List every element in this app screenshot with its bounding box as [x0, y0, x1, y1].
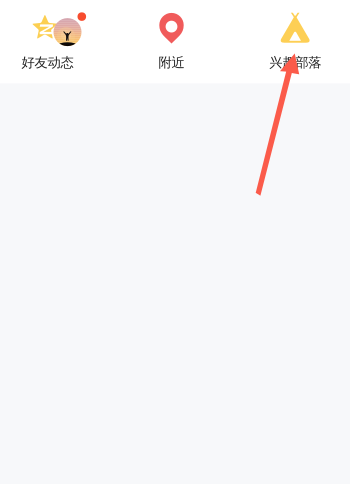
- button[interactable]: 兴趣部落: [250, 0, 340, 85]
- staticText: 附近: [158, 54, 184, 71]
- staticText: 兴趣部落: [269, 54, 321, 71]
- button[interactable]: 好友动态: [3, 0, 93, 85]
- button[interactable]: 附近: [126, 0, 216, 85]
- staticText: 好友动态: [22, 54, 74, 71]
